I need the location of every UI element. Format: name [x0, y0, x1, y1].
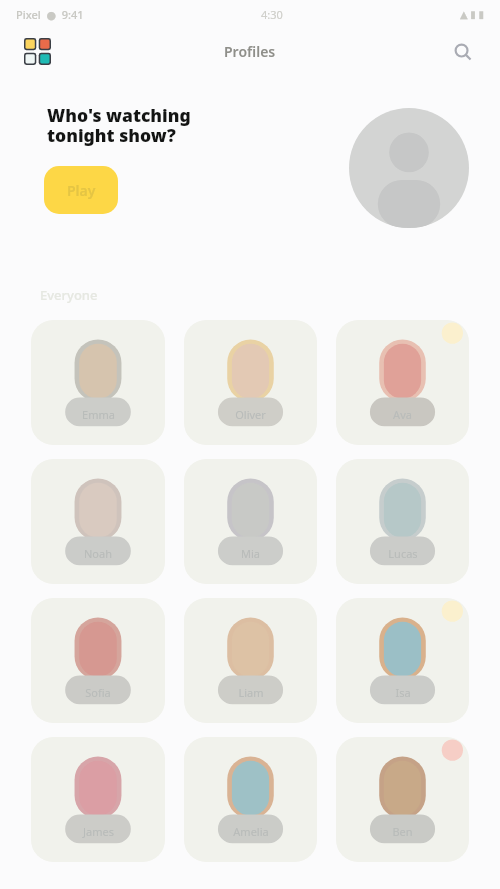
button[interactable]: Search [452, 41, 474, 63]
staticText: Who's watching tonight show? [47, 103, 191, 148]
staticText: 4:30 [261, 7, 283, 22]
staticText: James [83, 824, 114, 839]
button[interactable]: Lucas [336, 459, 469, 584]
button[interactable]: Amelia [184, 737, 317, 862]
button[interactable]: Emma [31, 320, 165, 445]
button[interactable]: Play [44, 166, 118, 214]
staticText: Ben [392, 824, 413, 839]
staticText: Everyone [40, 286, 98, 304]
button[interactable]: Noah [31, 459, 165, 584]
staticText: Play [67, 181, 96, 200]
staticText: Pixel ● 9:41 [16, 7, 84, 22]
button[interactable]: Isa [336, 598, 469, 723]
staticText: Noah [84, 546, 112, 561]
staticText: Profiles [224, 42, 276, 61]
button[interactable]: Menu [24, 38, 51, 65]
button[interactable]: Account [349, 108, 469, 228]
staticText: Isa [395, 685, 411, 700]
staticText: Mia [241, 546, 260, 561]
button[interactable]: Liam [184, 598, 317, 723]
staticText: Amelia [233, 824, 269, 839]
staticText: ▲ ▮ ▮ [460, 7, 484, 21]
staticText: Liam [238, 685, 264, 700]
staticText: Emma [82, 407, 115, 422]
staticText: Oliver [235, 407, 266, 422]
button[interactable]: Oliver [184, 320, 317, 445]
staticText: Ava [393, 407, 412, 422]
staticText: Lucas [388, 546, 418, 561]
staticText: Sofia [85, 685, 111, 700]
button[interactable]: Sofia [31, 598, 165, 723]
button[interactable]: Mia [184, 459, 317, 584]
button[interactable]: James [31, 737, 165, 862]
button[interactable]: Ben [336, 737, 469, 862]
button[interactable]: Ava [336, 320, 469, 445]
